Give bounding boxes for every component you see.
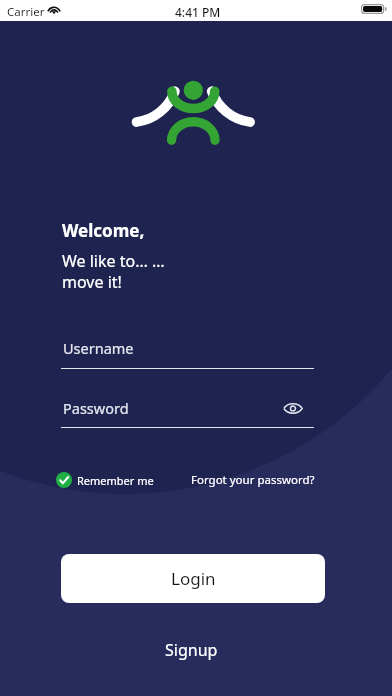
button[interactable]: Remember me [56, 469, 154, 491]
staticText: 4:41 PM [175, 4, 221, 20]
staticText: Forgot your password? [191, 472, 315, 488]
staticText: Password [63, 398, 129, 418]
staticText: Login [171, 567, 216, 590]
button[interactable]: Password [61, 394, 314, 431]
other: Show password [283, 402, 303, 415]
staticText: Username [63, 338, 134, 358]
staticText: We like to… … move it! [62, 250, 165, 293]
button[interactable]: Signup [162, 637, 221, 663]
staticText: Remember me [77, 473, 154, 488]
button[interactable]: Forgot your password? [191, 469, 315, 491]
staticText: Welcome, [62, 219, 145, 242]
button[interactable]: Login [61, 554, 325, 603]
button[interactable]: Username [61, 334, 314, 372]
staticText: Signup [165, 639, 218, 661]
staticText: Carrier [7, 4, 45, 20]
